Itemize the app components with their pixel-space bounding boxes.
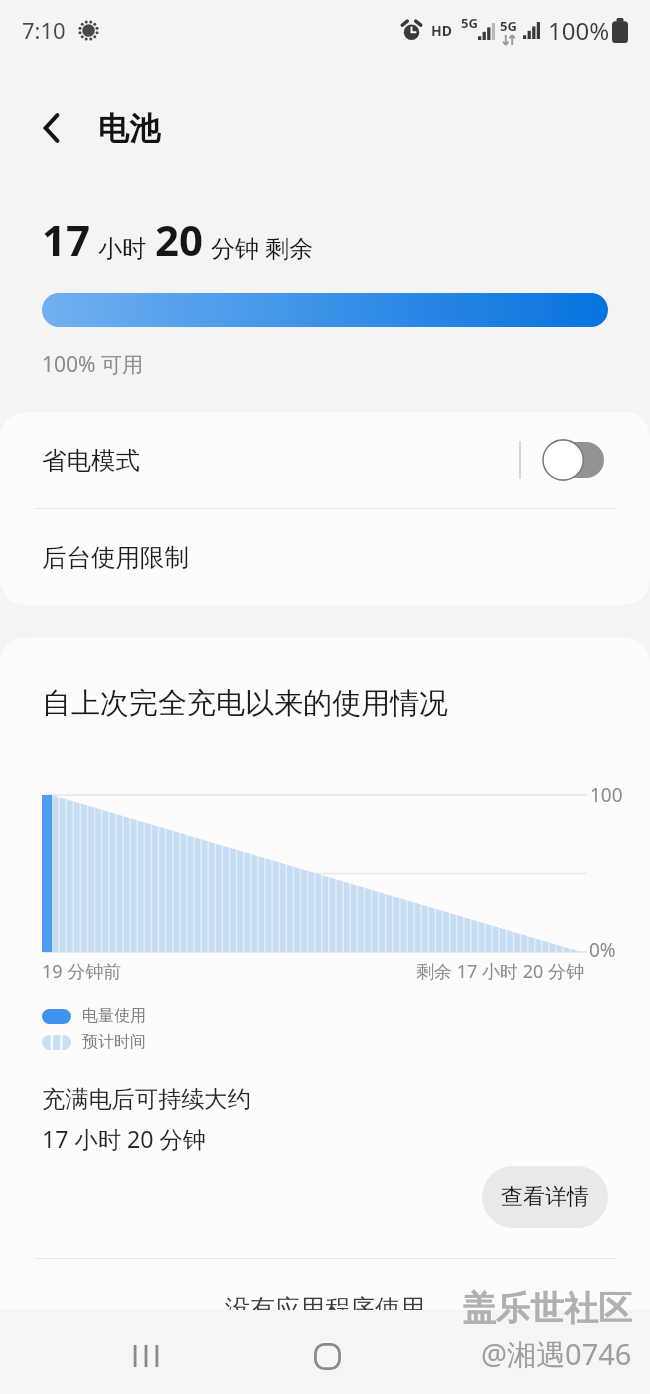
staticText: 电池	[98, 109, 160, 148]
staticText: 100% 可用	[42, 350, 143, 379]
staticText: 19 分钟前	[42, 959, 122, 984]
staticText: @湘遇0746	[481, 1334, 632, 1374]
staticText: 7:10	[22, 15, 66, 45]
staticText: 后台使用限制	[42, 542, 189, 573]
button[interactable]: Recent apps	[110, 1314, 182, 1394]
button[interactable]: Home	[291, 1314, 363, 1394]
staticText: 5G	[500, 17, 517, 35]
staticText: 100	[590, 782, 623, 808]
staticText: 0%	[589, 937, 616, 963]
button[interactable]: 查看详情	[482, 1166, 608, 1228]
staticText: 分钟 剩余	[211, 231, 314, 264]
button[interactable]: Back	[472, 1310, 544, 1394]
staticText: HD	[431, 21, 452, 40]
staticText: 自上次完全充电以来的使用情况	[42, 685, 448, 722]
staticText: 17 小时 20 分钟	[42, 1123, 206, 1155]
staticText: 预计时间	[82, 1032, 146, 1052]
button[interactable]: Power saving mode toggle	[544, 442, 604, 478]
staticText: 充满电后可持续大约	[42, 1085, 251, 1114]
staticText: 20	[155, 211, 204, 268]
staticText: 100%	[548, 14, 610, 47]
staticText: 小时	[98, 234, 146, 264]
staticText: 电量使用	[82, 1006, 146, 1026]
staticText: 查看详情	[501, 1183, 589, 1211]
button[interactable]: Back	[24, 100, 80, 156]
staticText: 省电模式	[42, 445, 140, 476]
button[interactable]: 后台使用限制	[0, 509, 650, 605]
staticText: 5G	[461, 14, 478, 32]
staticText: 剩余 17 小时 20 分钟	[416, 959, 584, 984]
staticText: 17	[42, 211, 91, 268]
staticText: 盖乐世社区	[462, 1287, 632, 1330]
button[interactable]: 省电模式	[0, 412, 650, 508]
staticText: 没有应用程序使用	[225, 1293, 425, 1324]
